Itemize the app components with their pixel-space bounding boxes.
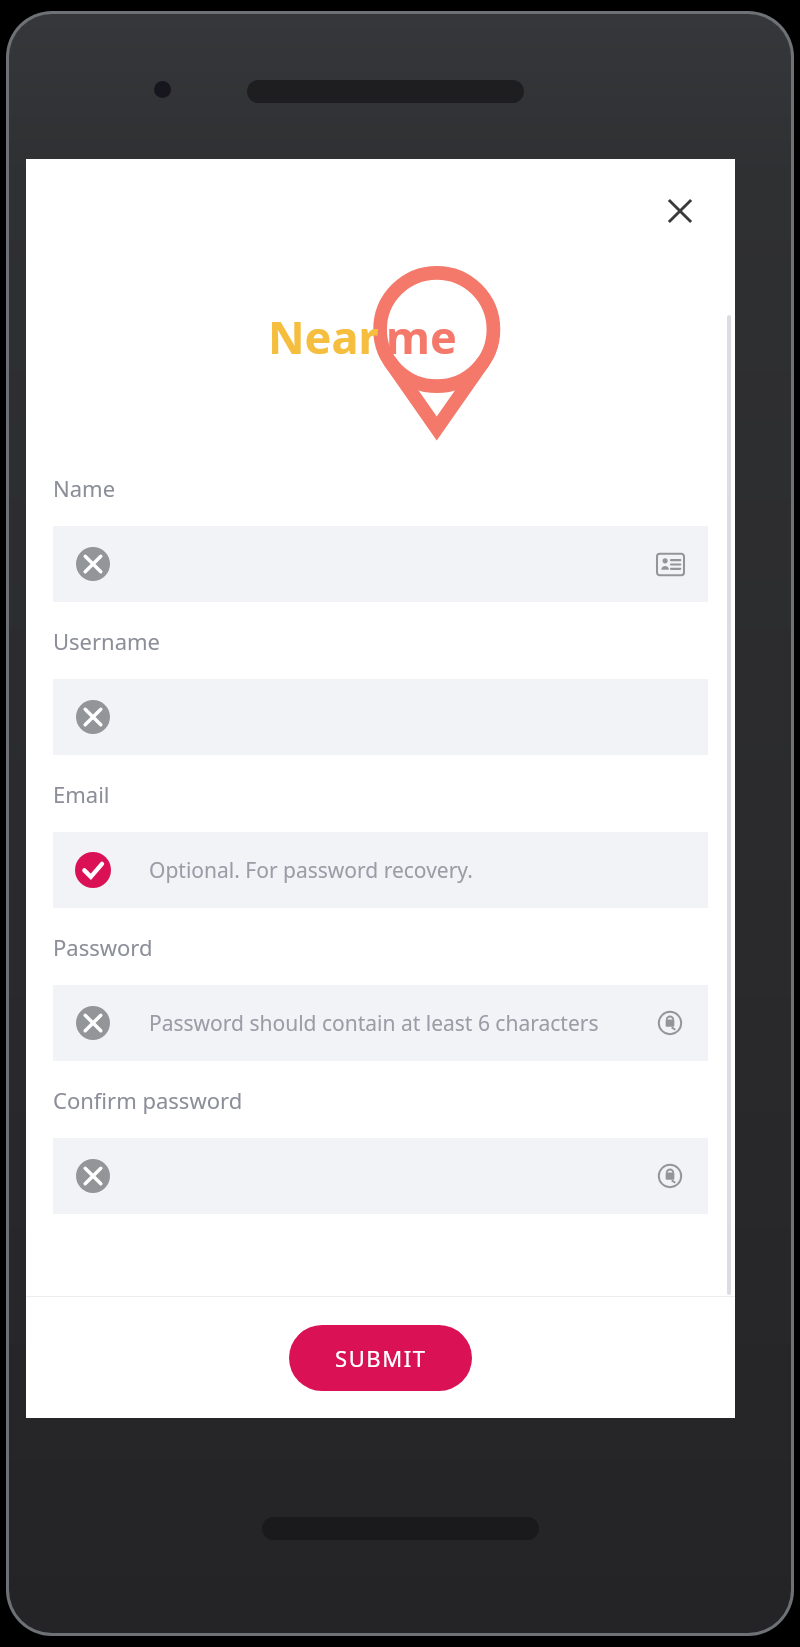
button[interactable]: Valid xyxy=(53,832,708,908)
staticText: Near xyxy=(268,306,379,367)
staticText: Password should contain at least 6 chara… xyxy=(149,1009,599,1038)
button[interactable]: Clear xyxy=(53,526,708,602)
staticText: SUBMIT xyxy=(335,1343,427,1373)
button[interactable]: Clear xyxy=(75,1005,111,1041)
button[interactable]: Clear xyxy=(75,1158,111,1194)
button[interactable]: Close xyxy=(652,183,708,239)
button[interactable]: Show password xyxy=(650,1003,690,1043)
button[interactable]: Clear xyxy=(53,1138,708,1214)
staticText: Password xyxy=(53,932,153,962)
button[interactable]: SUBMIT xyxy=(289,1325,472,1391)
staticText: Email xyxy=(53,779,110,809)
button[interactable]: Pick contact xyxy=(650,544,690,584)
staticText: me xyxy=(386,306,457,367)
button[interactable]: Valid xyxy=(75,852,111,888)
button[interactable]: Clear xyxy=(53,985,708,1061)
button[interactable]: Clear xyxy=(75,699,111,735)
staticText: Username xyxy=(53,626,161,656)
button[interactable]: Clear xyxy=(75,546,111,582)
button[interactable]: Show password xyxy=(650,1156,690,1196)
staticText: Confirm password xyxy=(53,1085,243,1115)
button[interactable]: Clear xyxy=(53,679,708,755)
staticText: Name xyxy=(53,473,116,503)
staticText: Optional. For password recovery. xyxy=(149,856,473,885)
